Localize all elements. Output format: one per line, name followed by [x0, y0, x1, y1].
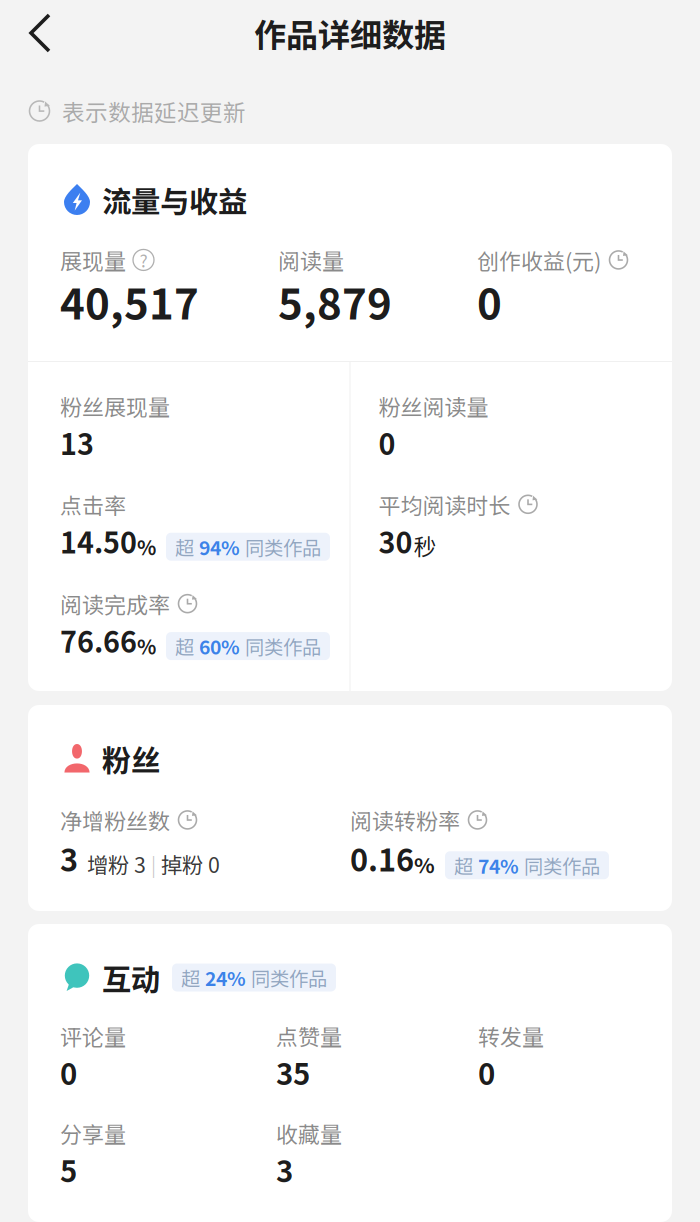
staticText: 同类作品	[524, 851, 600, 879]
staticText: ?	[139, 247, 147, 272]
staticText: 阅读量	[278, 244, 344, 276]
staticText: 超	[175, 632, 194, 660]
staticText: 转发量	[478, 1020, 544, 1052]
staticText: 94%	[199, 533, 240, 561]
staticText: 展现量	[60, 244, 126, 276]
staticText: 14.50	[60, 520, 137, 562]
staticText: 秒	[413, 529, 436, 562]
staticText: 同类作品	[245, 533, 321, 561]
staticText: |	[151, 851, 156, 878]
staticText: 点击率	[60, 488, 126, 520]
staticText: 阅读转粉率	[350, 804, 460, 836]
staticText: 0	[378, 422, 395, 463]
staticText: 30	[378, 520, 412, 562]
staticText: 超	[175, 533, 194, 561]
staticText: 作品详细数据	[254, 10, 446, 56]
staticText: 3	[60, 836, 78, 880]
staticText: 流量与收益	[102, 178, 247, 221]
staticText: 互动	[102, 956, 160, 999]
staticText: 3	[276, 1148, 293, 1191]
button[interactable]: Back	[0, 0, 71, 66]
staticText: 分享量	[60, 1117, 126, 1149]
staticText: 点赞量	[276, 1020, 342, 1052]
staticText: 76.66	[60, 620, 137, 661]
staticText: 超	[454, 851, 473, 879]
staticText: 60%	[199, 632, 240, 660]
staticText: %	[137, 631, 156, 660]
staticText: 13	[60, 422, 94, 463]
staticText: 粉丝展现量	[60, 390, 170, 422]
staticText: 粉丝	[102, 737, 160, 780]
staticText: 创作收益(元)	[477, 244, 601, 276]
staticText: 收藏量	[276, 1117, 342, 1149]
staticText: 阅读完成率	[60, 588, 170, 620]
staticText: 0	[478, 1051, 495, 1093]
staticText: 0.16	[350, 836, 414, 880]
staticText: 同类作品	[251, 963, 327, 991]
staticText: 5	[60, 1148, 77, 1191]
staticText: 粉丝阅读量	[378, 390, 488, 422]
staticText: 40,517	[60, 271, 199, 332]
staticText: 增粉 3	[87, 848, 146, 879]
staticText: %	[414, 848, 435, 879]
staticText: 掉粉 0	[161, 848, 220, 879]
staticText: 平均阅读时长	[378, 488, 510, 520]
staticText: 表示数据延迟更新	[62, 95, 246, 127]
staticText: 0	[477, 271, 502, 332]
staticText: 5,879	[278, 271, 392, 332]
staticText: 超	[181, 963, 200, 991]
staticText: %	[137, 532, 156, 561]
staticText: 净增粉丝数	[60, 804, 170, 836]
staticText: 0	[60, 1051, 77, 1093]
staticText: 同类作品	[245, 632, 321, 660]
staticText: 74%	[478, 851, 519, 879]
staticText: 24%	[205, 963, 246, 991]
staticText: 评论量	[60, 1020, 126, 1052]
staticText: 35	[276, 1051, 310, 1093]
